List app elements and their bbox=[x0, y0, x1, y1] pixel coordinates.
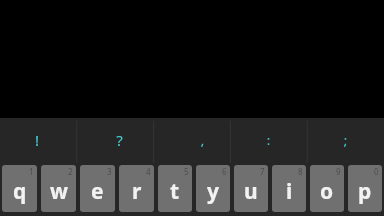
staticText: y bbox=[207, 177, 219, 206]
staticText: 5 bbox=[184, 166, 189, 177]
button[interactable]: Insert : bbox=[230, 118, 307, 163]
staticText: ; bbox=[307, 131, 384, 149]
button[interactable]: 5 bbox=[158, 165, 192, 212]
staticText: q bbox=[13, 177, 27, 206]
button[interactable]: 0 bbox=[348, 165, 382, 212]
button[interactable]: 7 bbox=[234, 165, 268, 212]
button[interactable]: 1 bbox=[2, 165, 37, 212]
staticText: ? bbox=[81, 130, 158, 150]
staticText: 1 bbox=[29, 166, 34, 177]
staticText: 7 bbox=[260, 166, 265, 177]
staticText: 3 bbox=[107, 166, 112, 177]
button[interactable]: 6 bbox=[196, 165, 230, 212]
staticText: i bbox=[286, 177, 293, 206]
button[interactable]: 4 bbox=[119, 165, 154, 212]
staticText: 0 bbox=[374, 166, 379, 177]
button[interactable]: 3 bbox=[80, 165, 115, 212]
staticText: , bbox=[164, 131, 241, 149]
staticText: w bbox=[50, 177, 68, 206]
button[interactable]: Insert ! bbox=[0, 118, 76, 163]
button[interactable]: 9 bbox=[310, 165, 344, 212]
staticText: e bbox=[91, 177, 104, 206]
button[interactable]: 2 bbox=[41, 165, 76, 212]
button[interactable]: Insert , bbox=[153, 118, 230, 163]
staticText: : bbox=[230, 131, 307, 149]
staticText: 4 bbox=[146, 166, 151, 177]
staticText: t bbox=[170, 177, 180, 206]
staticText: o bbox=[320, 177, 334, 206]
staticText: 2 bbox=[68, 166, 73, 177]
staticText: p bbox=[358, 177, 372, 206]
button[interactable]: Insert ? bbox=[76, 118, 153, 163]
button[interactable]: Insert ; bbox=[307, 118, 384, 163]
staticText: ! bbox=[0, 130, 75, 150]
staticText: r bbox=[132, 177, 142, 206]
staticText: 6 bbox=[222, 166, 227, 177]
staticText: u bbox=[244, 177, 258, 206]
staticText: 9 bbox=[336, 166, 341, 177]
staticText: 8 bbox=[298, 166, 303, 177]
button[interactable]: 8 bbox=[272, 165, 306, 212]
